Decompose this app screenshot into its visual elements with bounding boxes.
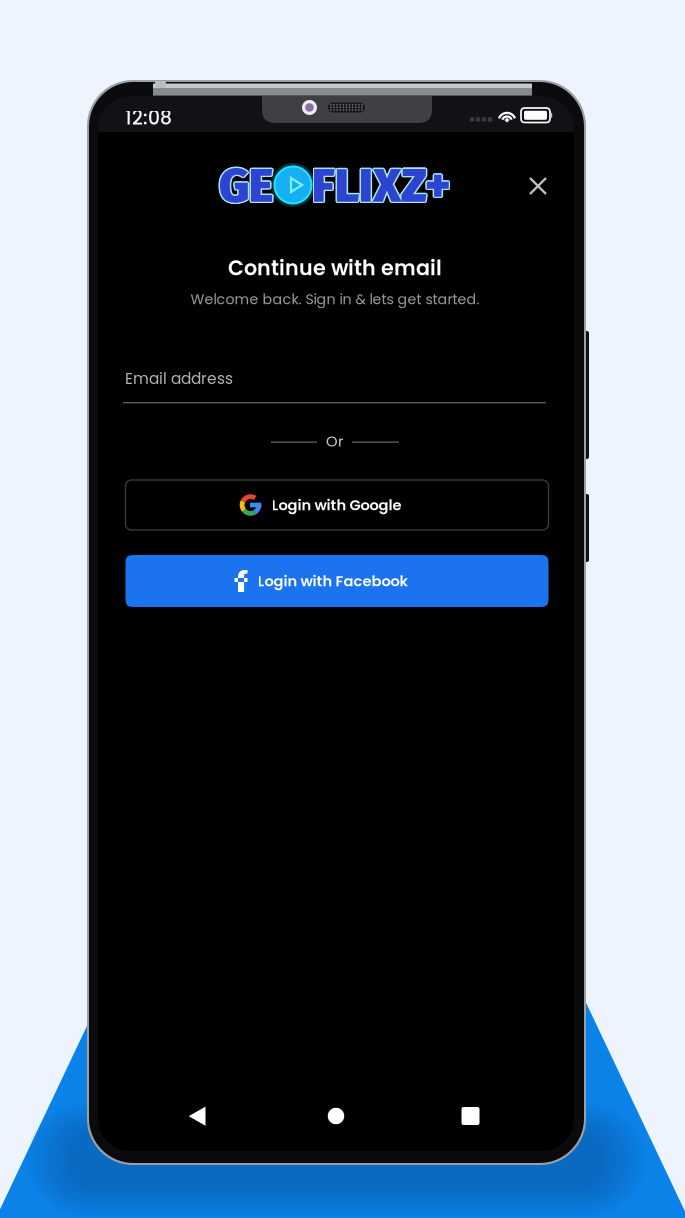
button[interactable]: Recent apps [452,1098,488,1134]
staticText: GE [220,158,274,214]
button[interactable]: Login with Facebook [125,555,548,607]
staticText: 12:08 [125,105,172,131]
button[interactable]: Login with Google [125,480,548,530]
staticText: Continue with email [228,253,442,282]
staticText: GE [220,157,274,213]
staticText: FLIXZ+ [313,159,452,215]
staticText: GE [218,159,272,215]
staticText: FLIXZ+ [312,158,451,214]
staticText: GE [220,159,274,215]
button[interactable]: Back [179,1098,215,1134]
staticText: GE [219,157,273,213]
staticText: Welcome back. Sign in & lets get started… [190,289,479,309]
staticText: GE [219,159,273,215]
staticText: Login with Facebook [257,571,408,591]
staticText: FLIXZ+ [313,158,452,214]
staticText: FLIXZ+ [311,159,450,215]
staticText: Email address [125,368,233,389]
staticText: GE [219,158,273,214]
staticText: FLIXZ+ [311,158,450,214]
staticText: Login with Google [271,495,401,515]
staticText: GE [218,158,272,214]
staticText: FLIXZ+ [313,157,452,213]
staticText: FLIXZ+ [311,157,450,213]
button[interactable]: Home [318,1098,354,1134]
staticText: FLIXZ+ [312,157,451,213]
staticText: GE [218,157,272,213]
staticText: Or [326,431,343,451]
button[interactable]: Close [522,170,553,201]
staticText: FLIXZ+ [312,159,451,215]
